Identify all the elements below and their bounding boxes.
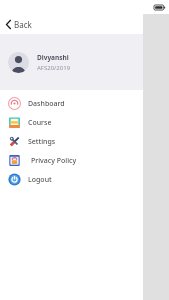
button[interactable]: Privacy Policy bbox=[0, 151, 143, 170]
staticText: Back bbox=[14, 19, 32, 30]
button[interactable]: Divyanshi bbox=[0, 34, 143, 90]
staticText: Dashboard bbox=[28, 99, 65, 109]
button[interactable]: Course bbox=[0, 113, 143, 132]
staticText: Course bbox=[28, 118, 52, 128]
button[interactable]: Logout bbox=[0, 170, 143, 189]
staticText: Logout bbox=[28, 175, 52, 185]
staticText: AFS20/2019 bbox=[37, 64, 71, 72]
staticText: Privacy Policy bbox=[31, 156, 77, 166]
button[interactable]: Back bbox=[0, 16, 40, 33]
staticText: Divyanshi bbox=[37, 53, 69, 62]
staticText: Settings bbox=[28, 137, 56, 147]
button[interactable]: Dashboard bbox=[0, 94, 143, 113]
button[interactable]: Settings bbox=[0, 132, 143, 151]
